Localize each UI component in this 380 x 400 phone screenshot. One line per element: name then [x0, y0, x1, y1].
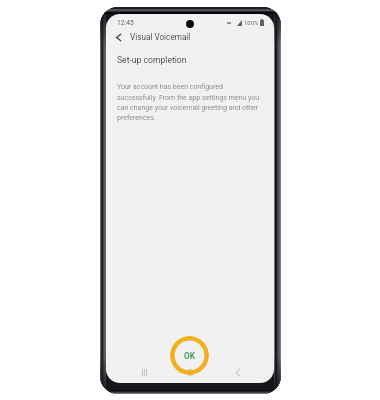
staticText: Set-up completion — [117, 55, 187, 65]
button[interactable]: Recent apps — [134, 362, 154, 382]
staticText: Your account has been configured success… — [117, 83, 263, 122]
staticText: 12:45 — [117, 19, 134, 27]
staticText: OK — [184, 351, 195, 361]
button[interactable]: Navigate up — [111, 30, 126, 45]
staticText: Visual Voicemail — [130, 32, 191, 42]
button[interactable]: OK — [170, 336, 209, 375]
button[interactable]: Back — [228, 362, 248, 382]
staticText: 100% — [244, 19, 259, 26]
button[interactable]: Home — [180, 362, 200, 382]
